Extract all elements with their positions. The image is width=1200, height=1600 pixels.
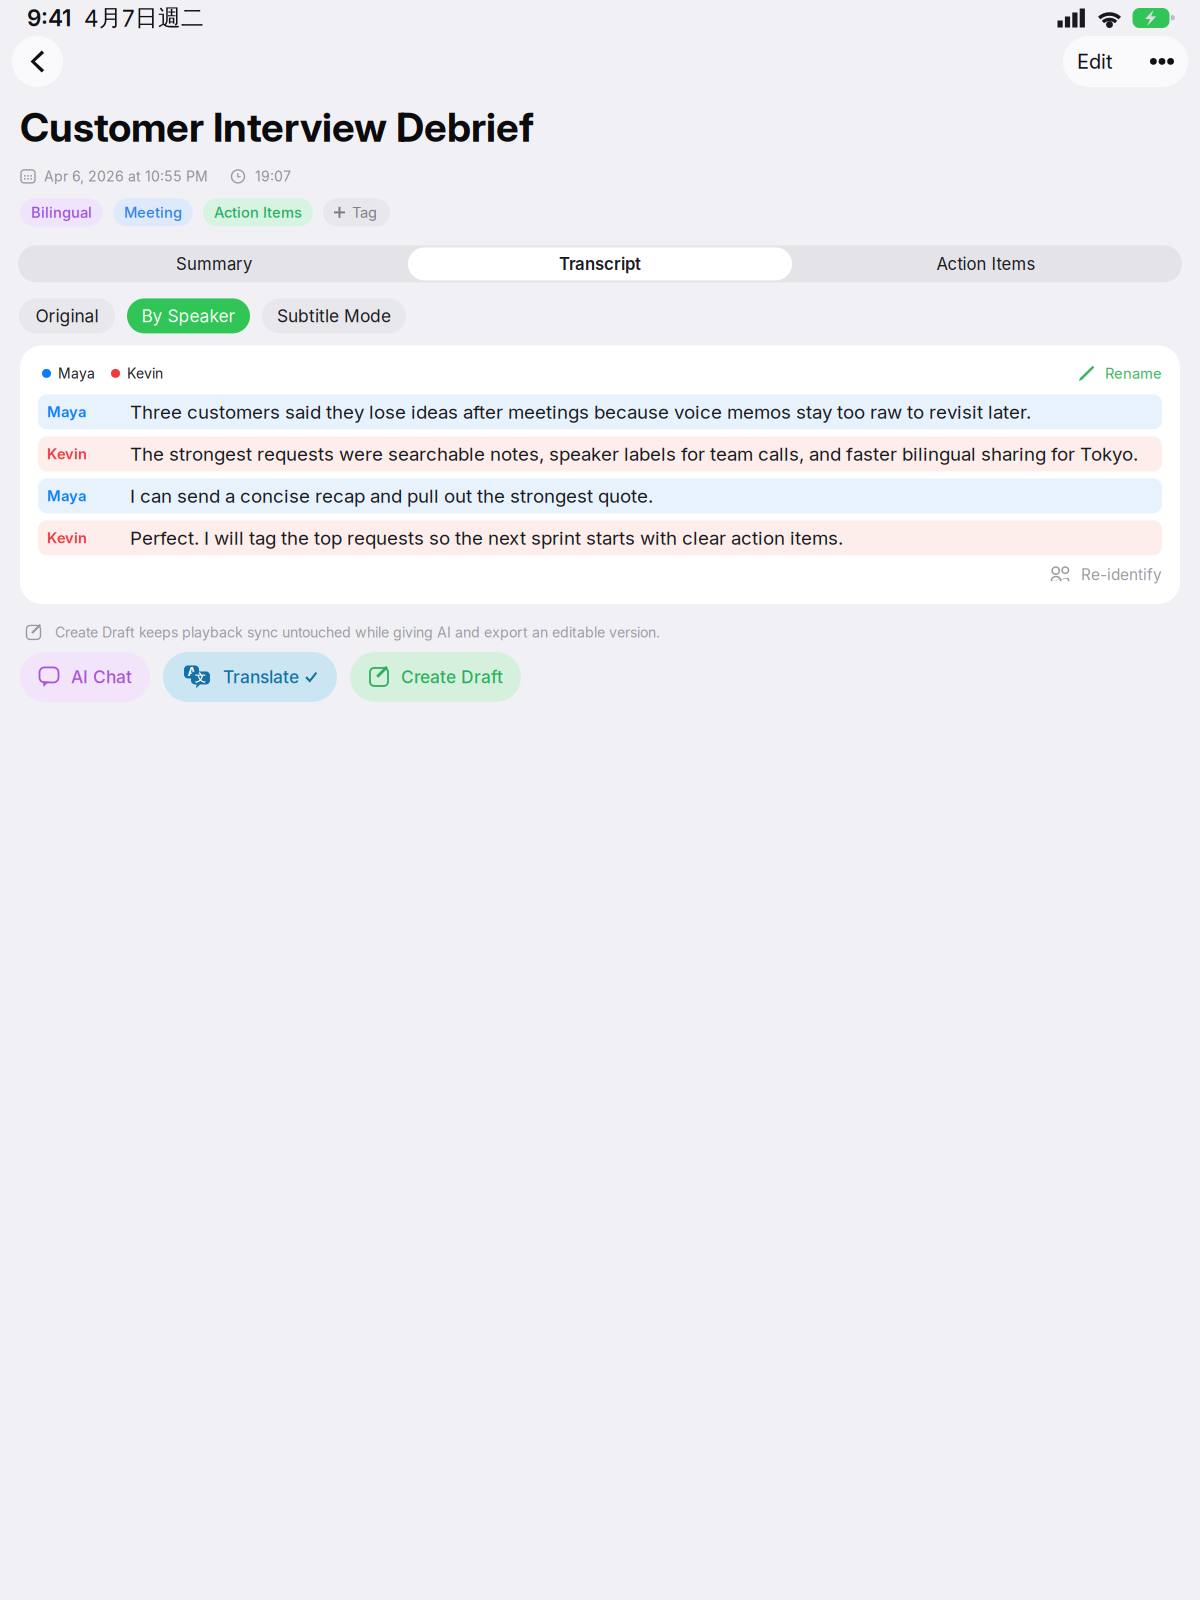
staticText: Rename [1105,364,1162,382]
staticText: Create Draft keeps playback sync untouch… [55,624,660,641]
staticText: I can send a concise recap and pull out … [130,485,653,507]
button[interactable]: By Speaker [127,298,250,333]
staticText: Perfect. I will tag the top requests so … [130,527,843,549]
button[interactable]: Transcript [408,247,792,280]
staticText: AI Chat [71,666,132,687]
staticText: Re-identify [1081,565,1162,584]
button[interactable]: Create Draft [350,652,521,702]
staticText: Action Items [936,254,1035,274]
staticText: Edit [1077,49,1113,74]
staticText: Maya [47,403,86,421]
staticText: Translate [223,666,299,687]
button[interactable]: Meeting [113,198,193,226]
staticText: Action Items [214,203,302,221]
staticText: By Speaker [141,305,235,326]
staticText: Kevin [127,365,163,382]
button[interactable]: AI Chat [20,652,150,702]
staticText: Kevin [47,529,87,547]
button[interactable]: More options [1125,36,1188,87]
button[interactable]: Summary [20,247,408,280]
staticText: Apr 6, 2026 at 10:55 PM [44,168,208,185]
button[interactable]: Original [19,298,115,333]
staticText: Maya [58,365,95,382]
button[interactable]: Back [12,36,63,87]
staticText: 4月7日週二 [84,4,204,32]
button[interactable]: Tag [323,198,390,226]
staticText: 9:41 [27,4,71,32]
staticText: Summary [176,254,252,274]
staticText: Create Draft [401,666,503,687]
button[interactable]: A [163,652,337,702]
button[interactable]: Bilingual [20,198,103,226]
staticText: 文 [195,671,206,685]
staticText: Kevin [47,445,87,463]
staticText: Transcript [559,254,641,274]
staticText: Meeting [124,203,182,221]
button[interactable]: Re-identify [1050,565,1162,584]
staticText: The strongest requests were searchable n… [130,443,1138,465]
button[interactable]: Rename [1079,364,1162,382]
staticText: Tag [352,203,377,221]
button[interactable]: Action Items [792,247,1180,280]
staticText: Maya [47,487,86,505]
button[interactable]: Edit [1063,36,1125,87]
button[interactable]: Subtitle Mode [262,298,406,333]
staticText: 19:07 [255,168,291,185]
staticText: A [187,665,195,679]
staticText: Original [35,305,98,326]
staticText: Customer Interview Debrief [20,103,534,151]
staticText: Subtitle Mode [277,305,391,326]
button[interactable]: Action Items [203,198,313,226]
staticText: Three customers said they lose ideas aft… [130,401,1031,423]
staticText: Bilingual [31,203,92,221]
